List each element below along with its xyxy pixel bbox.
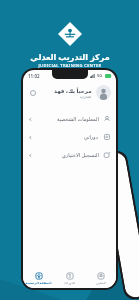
staticText: دوراتي [84,134,99,140]
staticText: 5G [97,73,103,78]
staticText: JUDICIAL TRAINING CENTER [38,63,102,68]
button[interactable]: الصفحة الرئيسية [23,268,54,288]
staticText: المعلومات الشخصية [57,116,99,123]
button[interactable]: دوراتي [23,128,116,146]
button[interactable]: المعلومات الشخصية [23,110,116,128]
staticText: التسجيل الاختياري [62,152,99,159]
staticText: الصفحة الرئيسية [25,281,52,285]
staticText: متدرب [80,94,92,99]
staticText: 11:02 [28,73,40,79]
staticText: حسابي [96,281,106,285]
button[interactable]: التسجيل الاختياري [23,146,116,164]
staticText: الدورات [64,281,75,285]
button[interactable]: حسابي [85,268,116,288]
staticText: مرحباً بك، فهد [54,87,92,94]
button[interactable]: Notifications [28,88,37,97]
button[interactable]: Profile [96,85,111,100]
staticText: مركز التدريب العدلي [30,51,110,62]
button[interactable]: الدورات [54,268,85,288]
